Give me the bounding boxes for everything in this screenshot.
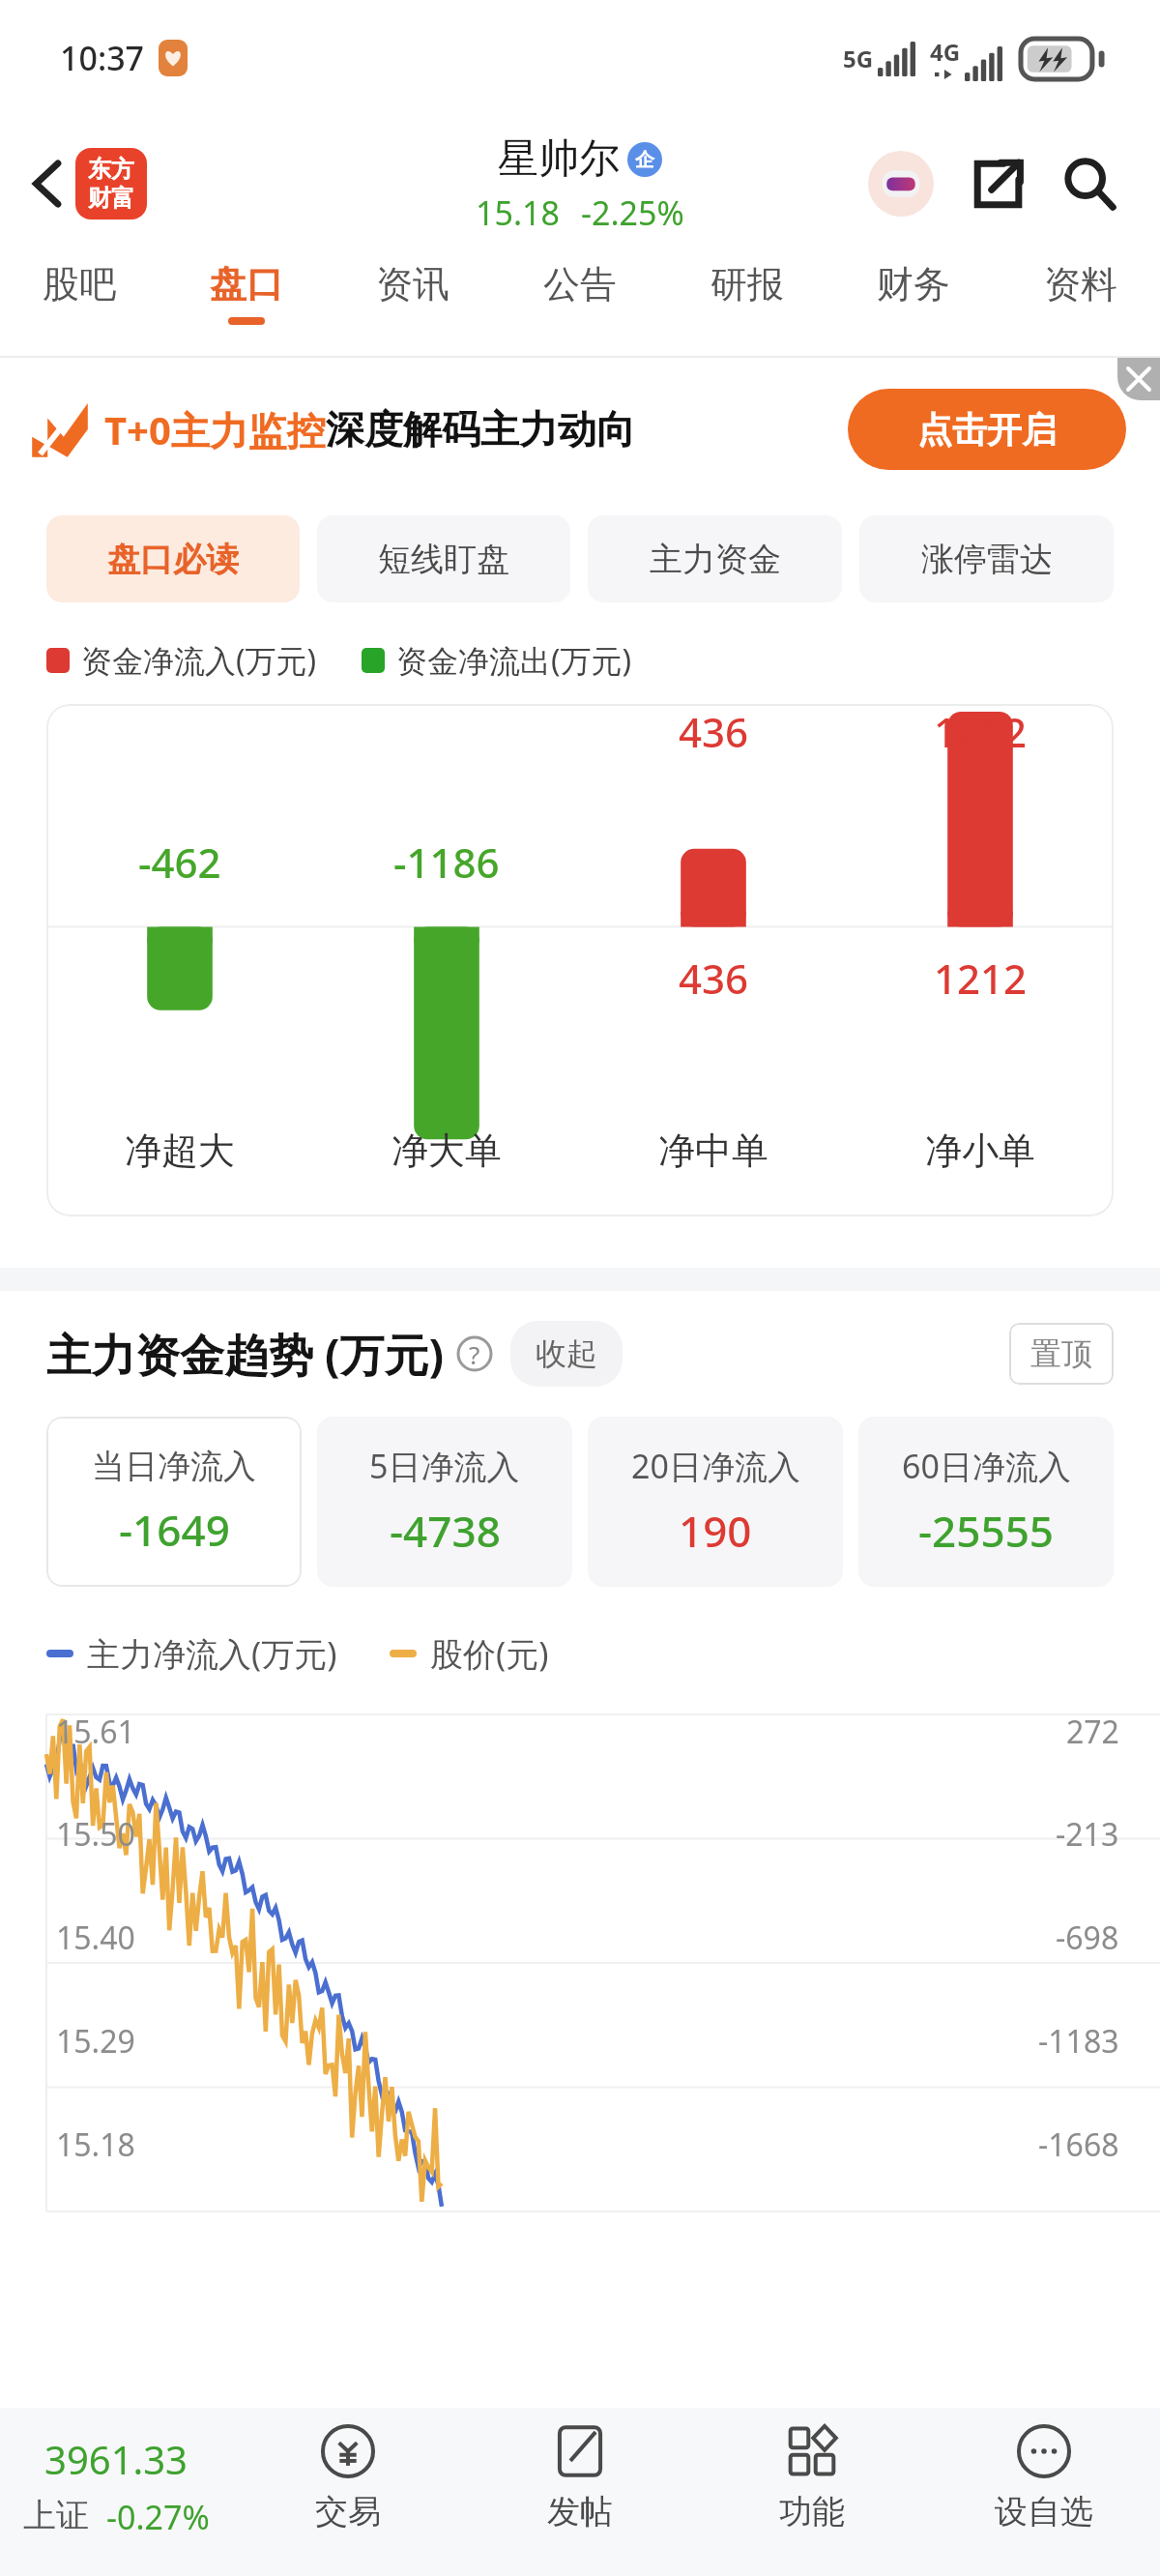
staticText: 资讯: [376, 261, 449, 307]
staticText: 点击开启: [917, 408, 1057, 452]
button[interactable]: Back: [21, 150, 73, 218]
staticText: 收起: [536, 1334, 597, 1373]
staticText: 财务: [877, 261, 950, 307]
staticText: 财富: [88, 184, 134, 213]
button[interactable]: 设自选: [928, 2408, 1160, 2576]
staticText: 深度解码主力动向: [326, 405, 635, 454]
staticText: 主力净流入(万元): [87, 1631, 337, 1676]
staticText: 5G: [843, 43, 874, 74]
staticText: 272: [1066, 1711, 1119, 1753]
button[interactable]: 资讯: [370, 251, 455, 335]
staticText: 短线盯盘: [378, 539, 509, 580]
staticText: 企: [635, 148, 654, 172]
button[interactable]: 资料: [1038, 251, 1123, 335]
staticText: ?: [469, 1337, 480, 1371]
button[interactable]: AI assistant: [868, 151, 934, 217]
staticText: 15.61: [56, 1711, 135, 1753]
staticText: 发帖: [547, 2491, 613, 2532]
staticText: 盘口必读: [107, 539, 239, 580]
button[interactable]: 盘口: [204, 251, 289, 335]
staticText: 功能: [779, 2491, 845, 2532]
staticText: T+0主力监控: [104, 403, 326, 456]
staticText: 公告: [543, 261, 617, 307]
staticText: 1212: [934, 704, 1028, 759]
button[interactable]: 涨停雷达: [859, 515, 1114, 602]
button[interactable]: 20日净流入: [588, 1417, 843, 1587]
button[interactable]: 3961.33: [0, 2408, 232, 2576]
staticText: 星帅尔: [498, 133, 620, 185]
staticText: 东方: [88, 155, 134, 184]
staticText: 15.18: [56, 2123, 135, 2166]
button[interactable]: 公告: [537, 251, 623, 335]
staticText: 净小单: [925, 1127, 1035, 1174]
staticText: 净超大: [125, 1127, 235, 1174]
staticText: 置顶: [1030, 1334, 1092, 1373]
staticText: 1212: [934, 951, 1028, 1006]
staticText: 15.29: [56, 2020, 135, 2063]
staticText: 主力资金趋势 (万元): [46, 1324, 445, 1385]
staticText: 上证: [23, 2495, 89, 2536]
staticText: 主力资金: [650, 539, 781, 580]
staticText: -698: [1056, 1917, 1119, 1959]
button[interactable]: 盘口必读: [46, 515, 300, 602]
staticText: 研报: [710, 261, 784, 307]
staticText: -2.25%: [581, 190, 684, 235]
staticText: 15.40: [56, 1917, 135, 1959]
staticText: -1668: [1038, 2123, 1119, 2166]
staticText: -25555: [918, 1502, 1054, 1560]
button[interactable]: 功能: [696, 2408, 928, 2576]
staticText: 4G: [930, 36, 961, 68]
staticText: -462: [138, 834, 221, 890]
staticText: -1649: [119, 1501, 230, 1559]
staticText: 盘口: [210, 261, 283, 307]
staticText: 60日净流入: [902, 1444, 1071, 1488]
staticText: 资料: [1044, 261, 1117, 307]
button[interactable]: 点击开启: [848, 389, 1126, 470]
button[interactable]: 主力资金: [588, 515, 842, 602]
button[interactable]: 交易: [232, 2408, 464, 2576]
button[interactable]: 当日净流入: [46, 1417, 302, 1587]
staticText: 5日净流入: [369, 1444, 520, 1488]
button[interactable]: 发帖: [464, 2408, 696, 2576]
button[interactable]: 置顶: [1009, 1323, 1114, 1385]
staticText: 涨停雷达: [921, 539, 1053, 580]
staticText: 净大单: [391, 1127, 502, 1174]
button[interactable]: 5日净流入: [317, 1417, 572, 1587]
staticText: 10:37: [60, 36, 145, 80]
staticText: 股吧: [43, 261, 116, 307]
staticText: 15.50: [56, 1813, 135, 1856]
staticText: 设自选: [995, 2491, 1093, 2532]
button[interactable]: 研报: [705, 251, 790, 335]
staticText: 资金净流出(万元): [396, 639, 632, 682]
staticText: 190: [679, 1502, 752, 1560]
button[interactable]: Share: [967, 153, 1029, 215]
staticText: 3961.33: [44, 2433, 188, 2485]
staticText: 436: [679, 951, 749, 1006]
button[interactable]: 股吧: [37, 251, 122, 335]
button[interactable]: Close: [1117, 358, 1160, 400]
staticText: -1186: [393, 834, 500, 890]
staticText: 20日净流入: [631, 1444, 800, 1488]
staticText: 当日净流入: [92, 1446, 256, 1487]
staticText: 15.18: [476, 190, 560, 235]
button[interactable]: 财务: [871, 251, 956, 335]
button[interactable]: 60日净流入: [858, 1417, 1114, 1587]
staticText: -0.27%: [106, 2495, 210, 2539]
button[interactable]: Help: [456, 1335, 493, 1372]
button[interactable]: East Money: [75, 148, 147, 220]
staticText: -4738: [390, 1502, 501, 1560]
button[interactable]: Search: [1058, 152, 1121, 216]
button[interactable]: 收起: [510, 1321, 623, 1387]
staticText: 交易: [315, 2491, 381, 2532]
staticText: -1183: [1038, 2020, 1119, 2063]
staticText: 436: [679, 704, 749, 759]
staticText: 资金净流入(万元): [81, 639, 317, 682]
button[interactable]: 短线盯盘: [317, 515, 570, 602]
staticText: -213: [1056, 1813, 1119, 1856]
staticText: 股价(元): [430, 1631, 549, 1676]
staticText: 净中单: [658, 1127, 768, 1174]
